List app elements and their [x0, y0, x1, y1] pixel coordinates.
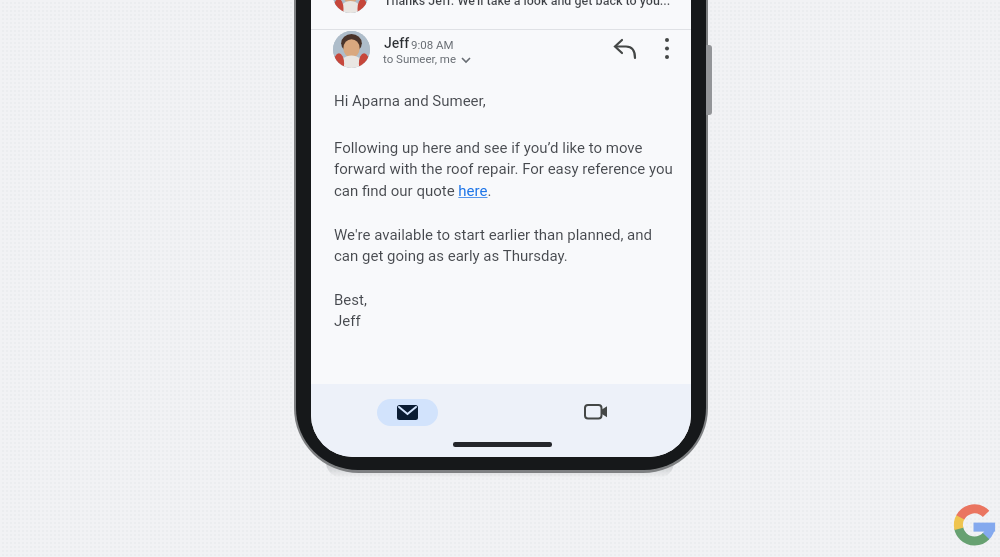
staticText: 9:08 AM: [411, 38, 454, 51]
staticText: We're available to start earlier than pl…: [334, 226, 653, 265]
staticText: Jeff: [384, 35, 410, 51]
button[interactable]: [449, 185, 475, 202]
button[interactable]: [659, 33, 675, 65]
staticText: Thanks Jeff. We'll take a look and get b…: [384, 0, 671, 8]
button[interactable]: to Sumeer, me: [383, 52, 457, 65]
button[interactable]: [611, 34, 639, 62]
button[interactable]: [333, 31, 370, 68]
button[interactable]: [578, 397, 610, 427]
staticText: Best, Jeff: [334, 291, 367, 330]
staticText: Hi Aparna and Sumeer,: [334, 92, 486, 110]
staticText: Following up here and see if you’d like …: [334, 139, 673, 200]
button[interactable]: [377, 399, 438, 426]
staticText: to Sumeer, me: [383, 52, 457, 65]
